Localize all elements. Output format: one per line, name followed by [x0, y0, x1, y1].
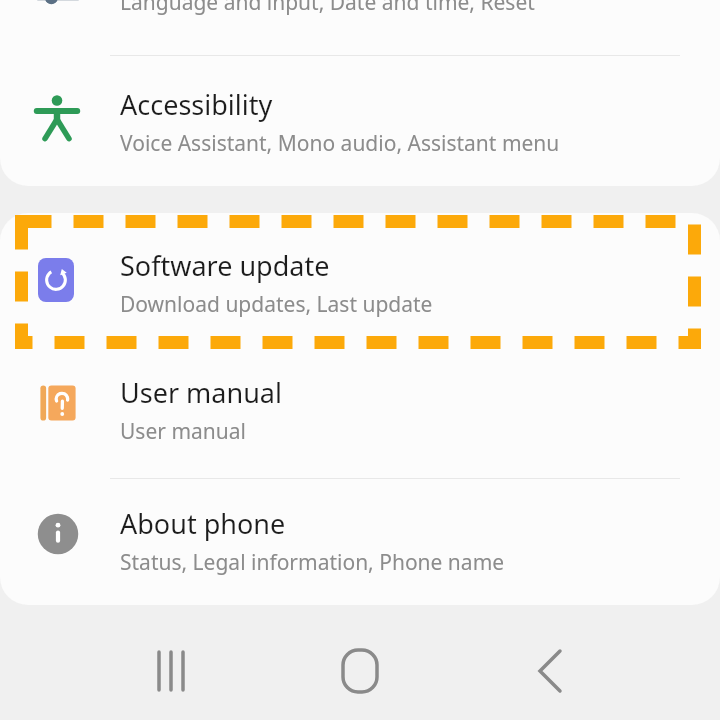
- staticText: Accessibility: [120, 86, 273, 123]
- staticText: About phone: [120, 505, 286, 542]
- staticText: Language and input, Date and time, Reset: [120, 0, 535, 17]
- staticText: Software update: [120, 247, 330, 284]
- button[interactable]: Recent apps: [135, 635, 207, 707]
- staticText: Voice Assistant, Mono audio, Assistant m…: [120, 129, 560, 158]
- staticText: Download updates, Last update: [120, 290, 433, 319]
- staticText: User manual: [120, 417, 246, 446]
- button[interactable]: About phone: [0, 479, 720, 605]
- button[interactable]: General management: [0, 0, 720, 55]
- button[interactable]: Accessibility: [0, 56, 720, 186]
- button[interactable]: Back: [510, 635, 582, 707]
- staticText: Status, Legal information, Phone name: [120, 548, 505, 577]
- button[interactable]: User manual: [0, 343, 720, 478]
- staticText: User manual: [120, 374, 282, 411]
- other: General management: [36, 0, 80, 32]
- button[interactable]: Home: [324, 635, 396, 707]
- button[interactable]: Software update: [0, 213, 720, 343]
